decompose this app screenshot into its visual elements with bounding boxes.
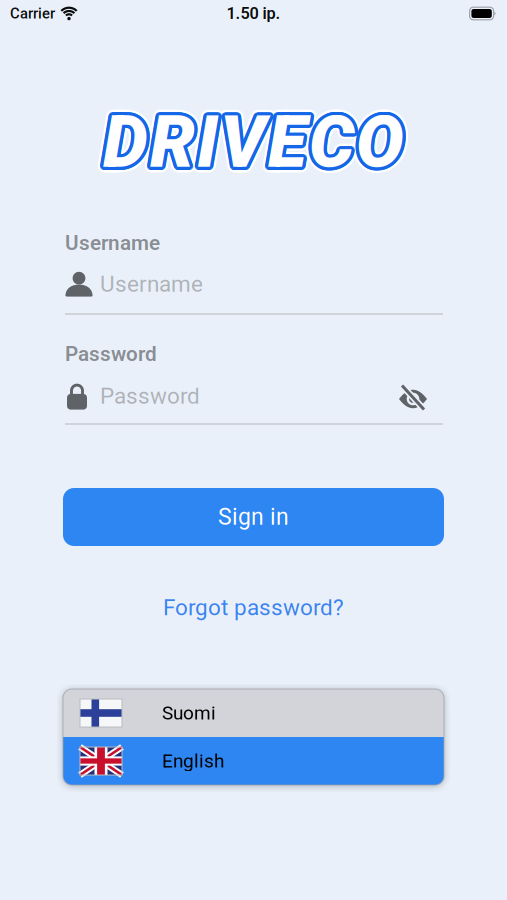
staticText: DRIVECO — [99, 105, 400, 188]
button[interactable]: Show password — [398, 384, 428, 410]
staticText: DRIVECO — [100, 99, 401, 182]
staticText: DRIVECO — [101, 103, 402, 187]
staticText: DRIVECO — [108, 103, 409, 186]
staticText: DRIVECO — [100, 102, 401, 186]
staticText: DRIVECO — [105, 106, 406, 189]
staticText: Password — [100, 383, 200, 409]
staticText: DRIVECO — [105, 103, 406, 187]
button[interactable]: Suomi — [63, 689, 444, 737]
staticText: Carrier — [10, 5, 55, 22]
staticText: DRIVECO — [103, 95, 404, 179]
staticText: DRIVECO — [104, 98, 405, 181]
staticText: 1.50 ip. — [226, 4, 280, 23]
staticText: DRIVECO — [105, 98, 406, 181]
staticText: Sign in — [218, 503, 289, 530]
staticText: DRIVECO — [98, 103, 399, 186]
staticText: DRIVECO — [105, 96, 406, 179]
staticText: DRIVECO — [106, 101, 407, 185]
staticText: Username — [65, 231, 160, 255]
button[interactable]: Sign in — [63, 488, 444, 546]
staticText: DRIVECO — [97, 101, 398, 184]
staticText: DRIVECO — [101, 96, 402, 179]
staticText: DRIVECO — [107, 97, 408, 180]
button[interactable]: Forgot password? — [163, 594, 344, 621]
staticText: DRIVECO — [102, 104, 403, 187]
staticText: DRIVECO — [106, 100, 407, 184]
staticText: Password — [65, 342, 157, 366]
staticText: DRIVECO — [109, 101, 410, 184]
button[interactable]: English — [63, 737, 444, 785]
staticText: DRIVECO — [100, 101, 401, 185]
staticText: DRIVECO — [98, 99, 399, 182]
staticText: DRIVECO — [103, 106, 404, 190]
staticText: DRIVECO — [101, 106, 402, 189]
staticText: DRIVECO — [100, 100, 401, 183]
staticText: Forgot password? — [163, 594, 344, 621]
staticText: DRIVECO — [99, 97, 400, 180]
staticText: DRIVECO — [106, 103, 407, 186]
staticText: DRIVECO — [102, 98, 403, 181]
staticText: DRIVECO — [108, 99, 409, 182]
staticText: DRIVECO — [104, 104, 405, 187]
staticText: English — [162, 750, 224, 772]
staticText: DRIVECO — [103, 101, 404, 184]
staticText: DRIVECO — [107, 105, 408, 188]
staticText: Username — [100, 271, 203, 297]
staticText: DRIVECO — [101, 98, 402, 181]
staticText: DRIVECO — [106, 99, 407, 182]
staticText: Suomi — [162, 702, 216, 724]
